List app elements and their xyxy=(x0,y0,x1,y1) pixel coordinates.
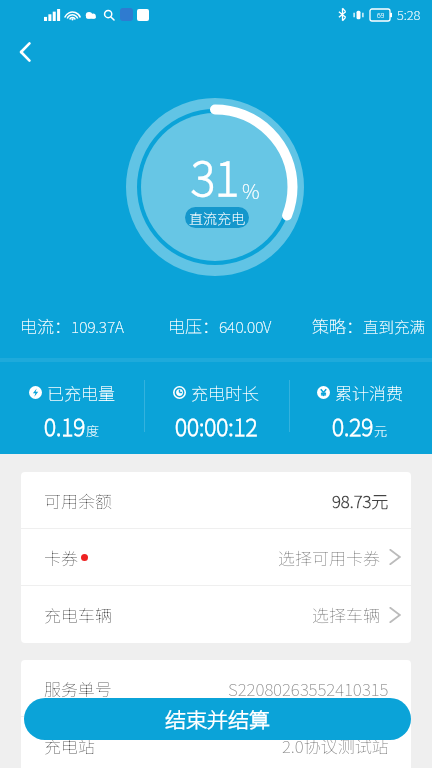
button[interactable]: 服务单号 xyxy=(21,660,411,716)
button[interactable]: 结束并结算 xyxy=(24,698,411,740)
button[interactable]: 充电车辆 xyxy=(21,586,411,643)
staticText: 卡券 xyxy=(44,545,78,570)
staticText: 选择车辆 xyxy=(312,602,380,627)
staticText: 度 xyxy=(86,421,100,440)
staticText: 2.0协议测试站 xyxy=(282,733,389,758)
button[interactable]: 卡券 xyxy=(21,529,411,585)
staticText: 已充电量 xyxy=(47,380,115,405)
staticText: 策略：直到充满 xyxy=(312,313,426,338)
staticText: 充电时长 xyxy=(191,380,259,405)
button[interactable]: 可用余额 xyxy=(21,472,411,528)
staticText: 服务单号 xyxy=(44,676,112,701)
staticText: 电流：109.37A xyxy=(20,313,124,338)
staticText: 69 xyxy=(377,10,385,20)
staticText: 98.73元 xyxy=(332,488,389,513)
staticText: 电压：640.00V xyxy=(168,313,272,338)
staticText: % xyxy=(242,176,260,205)
staticText: S22080263552410315 xyxy=(228,676,389,701)
staticText: 直流充电 xyxy=(189,208,245,228)
staticText: 累计消费 xyxy=(335,380,403,405)
staticText: 充电站 xyxy=(44,733,95,758)
staticText: 00:00:12 xyxy=(175,409,258,442)
staticText: 5:28 xyxy=(397,5,421,24)
staticText: 0.29 xyxy=(332,409,374,442)
button[interactable]: 充电站 xyxy=(21,717,411,768)
staticText: 31 xyxy=(191,143,239,210)
staticText: 元 xyxy=(374,421,388,440)
staticText: 结束并结算 xyxy=(165,704,270,734)
staticText: 充电车辆 xyxy=(44,602,112,627)
staticText: 0.19 xyxy=(44,409,86,442)
staticText: 可用余额 xyxy=(44,488,112,513)
staticText: 选择可用卡券 xyxy=(278,545,380,570)
button[interactable]: Back xyxy=(7,34,43,70)
